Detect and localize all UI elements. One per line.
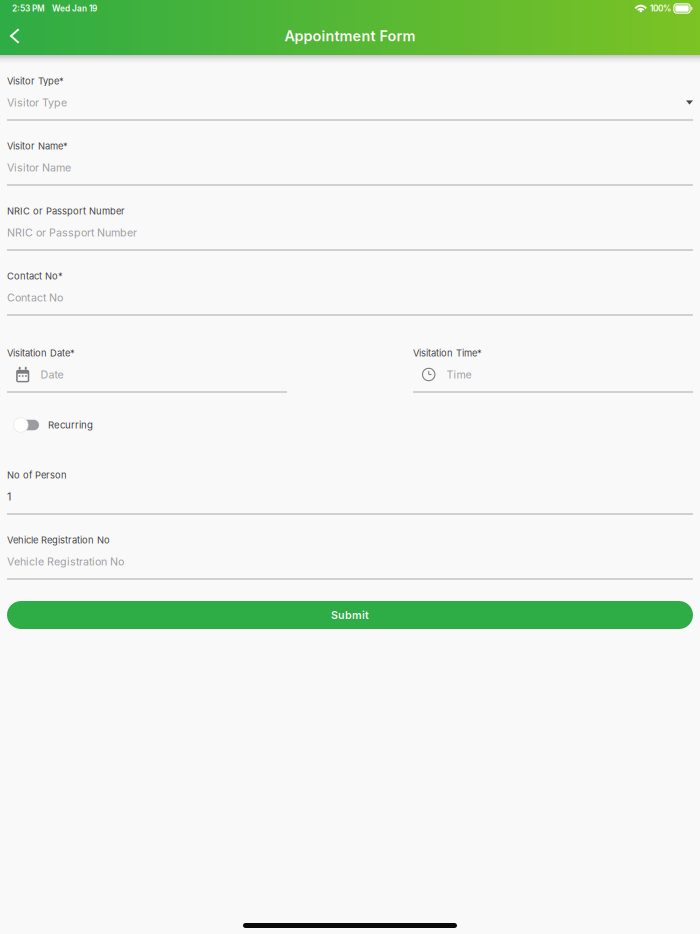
button[interactable]: No of Person	[7, 469, 693, 514]
staticText: Visitor Name	[7, 161, 71, 174]
staticText: NRIC or Passport Number	[7, 205, 125, 217]
button[interactable]: NRIC or Passport Number	[7, 205, 693, 250]
staticText: Time	[446, 368, 471, 381]
staticText: Visitation Date*	[7, 347, 75, 359]
button[interactable]: Submit	[7, 601, 693, 629]
staticText: Contact No	[7, 291, 63, 304]
staticText: Vehicle Registration No	[7, 534, 110, 546]
staticText: Date	[40, 368, 63, 381]
staticText: 1	[7, 490, 11, 503]
staticText: No of Person	[7, 469, 67, 481]
button[interactable]: Vehicle Registration No	[7, 534, 693, 579]
button[interactable]: Visitation Time*	[413, 347, 693, 392]
staticText: Recurring	[48, 419, 93, 431]
button[interactable]: Visitation Date*	[7, 347, 287, 392]
staticText: Contact No*	[7, 270, 63, 282]
button[interactable]: Back	[0, 20, 30, 52]
button[interactable]: Visitor Name*	[7, 140, 693, 185]
staticText: 100%	[650, 3, 671, 13]
staticText: Vehicle Registration No	[7, 555, 124, 568]
button[interactable]: Visitor Type*	[7, 75, 693, 120]
staticText: Visitor Type*	[7, 75, 64, 87]
button[interactable]: Contact No*	[7, 270, 693, 315]
staticText: Submit	[331, 608, 369, 621]
staticText: Wed Jan 19	[52, 3, 97, 13]
button[interactable]: Recurring	[7, 417, 693, 433]
staticText: Visitation Time*	[413, 347, 482, 359]
staticText: 2:53 PM	[12, 3, 45, 13]
staticText: Appointment Form	[284, 27, 415, 45]
staticText: NRIC or Passport Number	[7, 226, 137, 239]
staticText: Visitor Type	[7, 96, 67, 109]
staticText: Visitor Name*	[7, 140, 68, 152]
